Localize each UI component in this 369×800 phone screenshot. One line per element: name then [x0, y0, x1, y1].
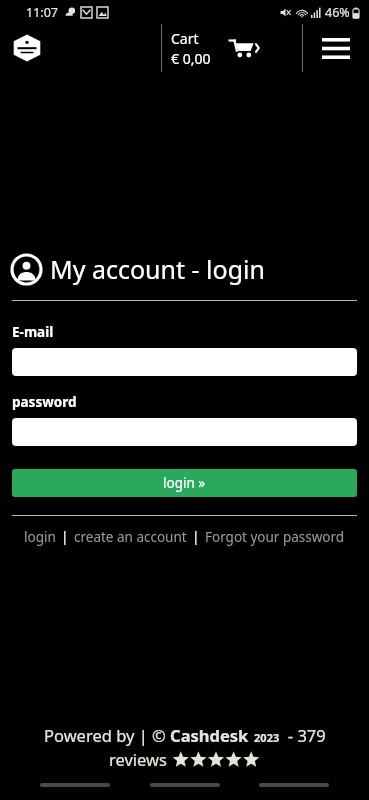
button[interactable]: create an account — [74, 528, 187, 546]
staticText: My account - login — [50, 252, 265, 286]
staticText: Forgot your password — [205, 528, 345, 546]
button[interactable]: System navigation — [150, 783, 220, 787]
button[interactable] — [12, 348, 357, 376]
staticText: € 0,00 — [171, 49, 211, 68]
staticText: login — [24, 528, 56, 546]
staticText: create an account — [74, 528, 187, 546]
button[interactable]: login » — [12, 469, 357, 497]
staticText: 11:07 — [26, 4, 58, 21]
staticText: login » — [163, 474, 206, 492]
button[interactable]: login — [24, 528, 56, 546]
button[interactable] — [12, 418, 357, 446]
button[interactable]: Menu — [302, 24, 369, 72]
staticText: 46% — [325, 4, 350, 21]
staticText: | — [61, 528, 69, 546]
button[interactable]: Forgot your password — [205, 528, 345, 546]
button[interactable]: System navigation — [40, 783, 110, 787]
staticText: E-mail — [12, 323, 54, 341]
button[interactable]: Shop logo home — [10, 31, 44, 65]
staticText: | — [192, 528, 200, 546]
button[interactable]: Cart — [162, 24, 259, 72]
staticText: Cart — [171, 29, 199, 48]
staticText: Powered by | © Cashdesk 2023 - 379 — [44, 724, 326, 746]
staticText: reviews — [109, 748, 172, 770]
staticText: password — [12, 393, 77, 411]
button[interactable]: System navigation — [259, 783, 329, 787]
